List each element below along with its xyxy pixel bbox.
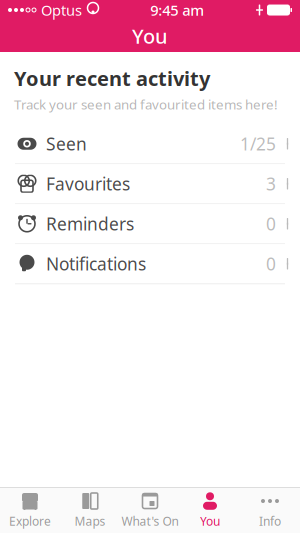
button[interactable]: Seen [0,124,300,164]
staticText: 9:45 am [150,0,204,20]
staticText: 0 [266,252,276,275]
staticText: Notifications [46,252,146,275]
staticText: Optus [41,0,82,20]
staticText: Maps [74,513,105,529]
staticText: Reminders [46,212,134,235]
staticText: You [200,513,220,529]
staticText: Info [259,513,281,529]
button[interactable]: You [180,488,240,532]
staticText: Explore [9,513,51,529]
button[interactable]: What's On [120,488,180,532]
staticText: Your recent activity [14,65,210,92]
button[interactable]: Info [240,488,300,532]
button[interactable]: Notifications [0,244,300,284]
button[interactable]: Favourites [0,164,300,204]
staticText: Seen [46,132,87,155]
button[interactable]: Maps [60,488,120,532]
staticText: 3 [266,172,276,195]
button[interactable]: Reminders [0,204,300,244]
staticText: Track your seen and favourited items her… [14,96,278,113]
staticText: 0 [266,212,276,235]
staticText: 1/25 [240,132,276,155]
button[interactable]: Explore [0,488,60,532]
staticText: You [132,23,168,49]
staticText: Favourites [46,172,130,195]
staticText: What's On [121,513,178,529]
